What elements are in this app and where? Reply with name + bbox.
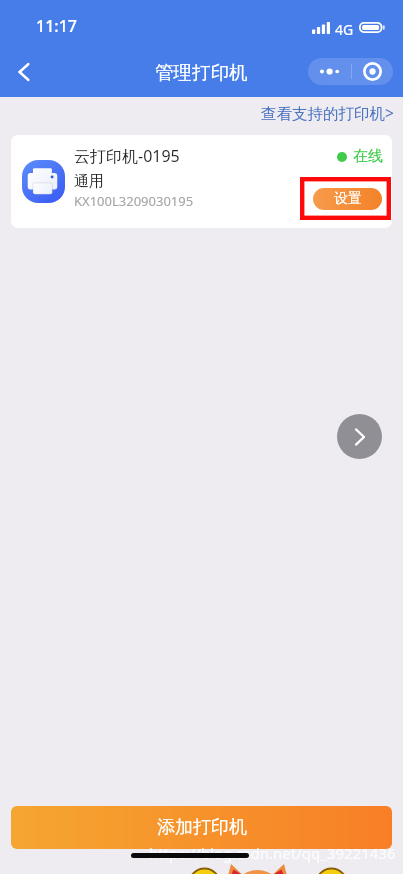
staticText: 11:17 bbox=[36, 15, 77, 37]
button[interactable]: 查看支持的打印机> bbox=[253, 99, 401, 126]
staticText: 云打印机-0195 bbox=[74, 145, 180, 167]
button[interactable]: 设置 bbox=[313, 188, 382, 210]
button[interactable]: 添加打印机 bbox=[11, 806, 392, 849]
staticText: KX100L3209030195 bbox=[74, 192, 194, 210]
button[interactable]: Back bbox=[2, 50, 46, 94]
staticText: 在线 bbox=[353, 147, 383, 166]
staticText: 设置 bbox=[334, 190, 362, 208]
staticText: 管理打印机 bbox=[155, 61, 248, 84]
staticText: 查看支持的打印机> bbox=[261, 102, 394, 123]
button[interactable]: Close mini program bbox=[352, 58, 393, 85]
staticText: 添加打印机 bbox=[157, 816, 247, 839]
button[interactable]: Next bbox=[337, 414, 382, 459]
staticText: https://blog.csdn.net/qq_39221436 bbox=[149, 843, 396, 863]
button[interactable]: 云打印机-0195 bbox=[11, 135, 392, 228]
staticText: 通用 bbox=[74, 172, 104, 191]
staticText: 4G bbox=[335, 20, 354, 39]
button[interactable]: More options bbox=[308, 58, 350, 85]
